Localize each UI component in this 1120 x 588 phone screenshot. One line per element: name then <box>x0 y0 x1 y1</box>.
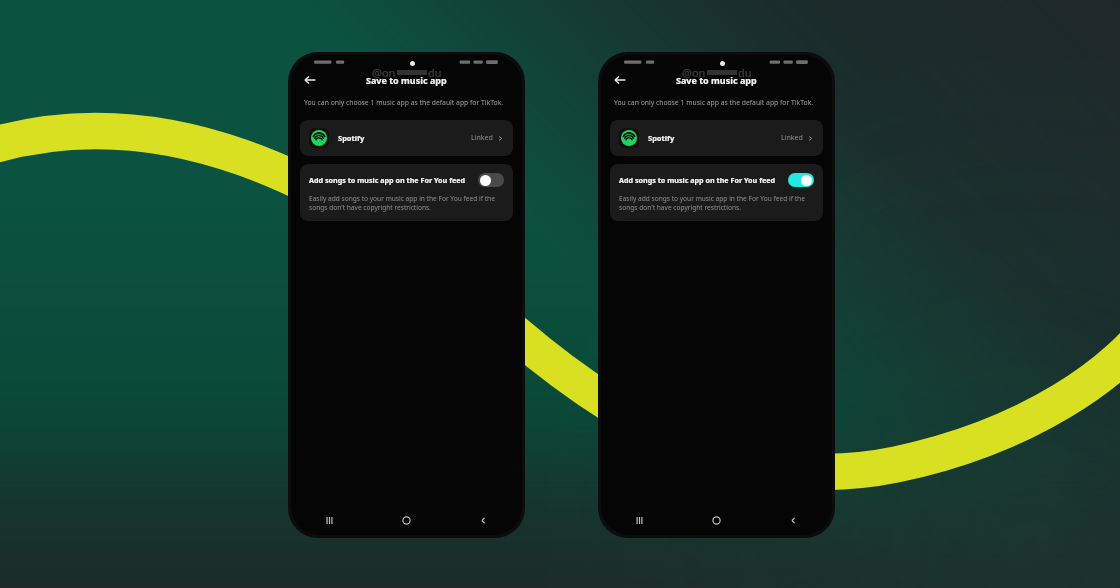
button[interactable]: Add songs to music app on the For You fe… <box>619 173 814 187</box>
staticText: Spotify <box>338 133 365 143</box>
staticText: Easily add songs to your music app in th… <box>619 194 814 212</box>
button[interactable]: Back <box>299 69 321 91</box>
staticText: Linked <box>471 133 493 143</box>
button[interactable]: Add songs to music app on the For You fe… <box>309 173 504 187</box>
staticText: You can only choose 1 music app as the d… <box>304 98 509 107</box>
staticText: Add songs to music app on the For You fe… <box>619 175 780 185</box>
button[interactable]: Recents <box>291 505 368 535</box>
button[interactable]: Spotify <box>300 120 513 156</box>
button[interactable]: Toggle on <box>788 173 814 187</box>
staticText: du <box>738 65 752 80</box>
button[interactable]: Spotify <box>610 120 823 156</box>
staticText: Spotify <box>648 133 675 143</box>
staticText: Easily add songs to your music app in th… <box>309 194 504 212</box>
staticText: du <box>428 65 442 80</box>
button[interactable]: Recents <box>601 505 678 535</box>
staticText: Add songs to music app on the For You fe… <box>309 175 470 185</box>
button[interactable]: Home <box>678 505 755 535</box>
button[interactable]: Home <box>368 505 445 535</box>
button[interactable]: Toggle off <box>478 173 504 187</box>
staticText: Linked <box>781 133 803 143</box>
button[interactable]: Back <box>445 505 522 535</box>
staticText: You can only choose 1 music app as the d… <box>614 98 819 107</box>
staticText: @on <box>682 65 706 80</box>
staticText: Save to music app <box>366 74 447 86</box>
staticText: @on <box>372 65 396 80</box>
button[interactable]: Back <box>755 505 832 535</box>
staticText: Save to music app <box>676 74 757 86</box>
button[interactable]: Back <box>609 69 631 91</box>
